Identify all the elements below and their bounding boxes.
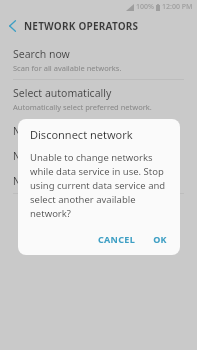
staticText: Network 1 <box>13 124 62 138</box>
button[interactable]: Network 3 <box>0 168 197 193</box>
staticText: Search now <box>13 47 70 61</box>
button[interactable]: Navigate up <box>0 14 24 38</box>
staticText: NETWORK OPERATORS <box>24 19 139 33</box>
staticText: Unable to change networks while data ser… <box>30 151 170 220</box>
staticText: 100% <box>136 2 154 12</box>
staticText: 12:00 PM <box>162 2 193 12</box>
staticText: Select automatically <box>13 86 112 100</box>
staticText: Scan for all available networks. <box>13 63 122 73</box>
button[interactable]: Select automatically <box>0 80 197 118</box>
staticText: Disconnect network <box>30 127 133 142</box>
button[interactable]: CANCEL <box>93 230 140 248</box>
staticText: Network 2 <box>13 149 62 163</box>
button[interactable]: OK <box>148 230 172 248</box>
button[interactable]: Network 2 <box>0 143 197 168</box>
staticText: Network 3 <box>13 174 62 188</box>
button[interactable]: Network 1 <box>0 118 197 143</box>
staticText: OK <box>153 233 167 245</box>
button[interactable]: Search now <box>0 41 197 79</box>
staticText: Automatically select preferred network. <box>13 102 152 112</box>
staticText: CANCEL <box>98 233 135 245</box>
